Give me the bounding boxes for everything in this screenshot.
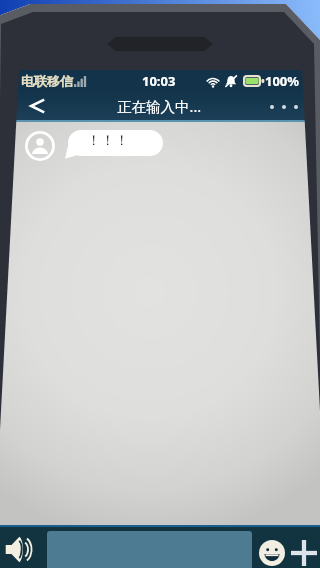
button[interactable]: Emoji <box>256 538 288 568</box>
staticText: 电联移信 <box>21 73 73 89</box>
button[interactable]: Voice message <box>4 534 42 564</box>
button[interactable]: More options <box>270 93 298 121</box>
staticText: 10:03 <box>142 72 176 90</box>
button[interactable]: Back <box>20 90 54 121</box>
button[interactable]: Contact avatar <box>25 131 55 161</box>
button[interactable]: ！！！ <box>65 130 163 159</box>
staticText: ！！！ <box>87 132 129 150</box>
staticText: 正在输入中... <box>117 96 202 116</box>
staticText: 100% <box>265 72 300 90</box>
button[interactable]: Add attachment <box>288 538 320 568</box>
